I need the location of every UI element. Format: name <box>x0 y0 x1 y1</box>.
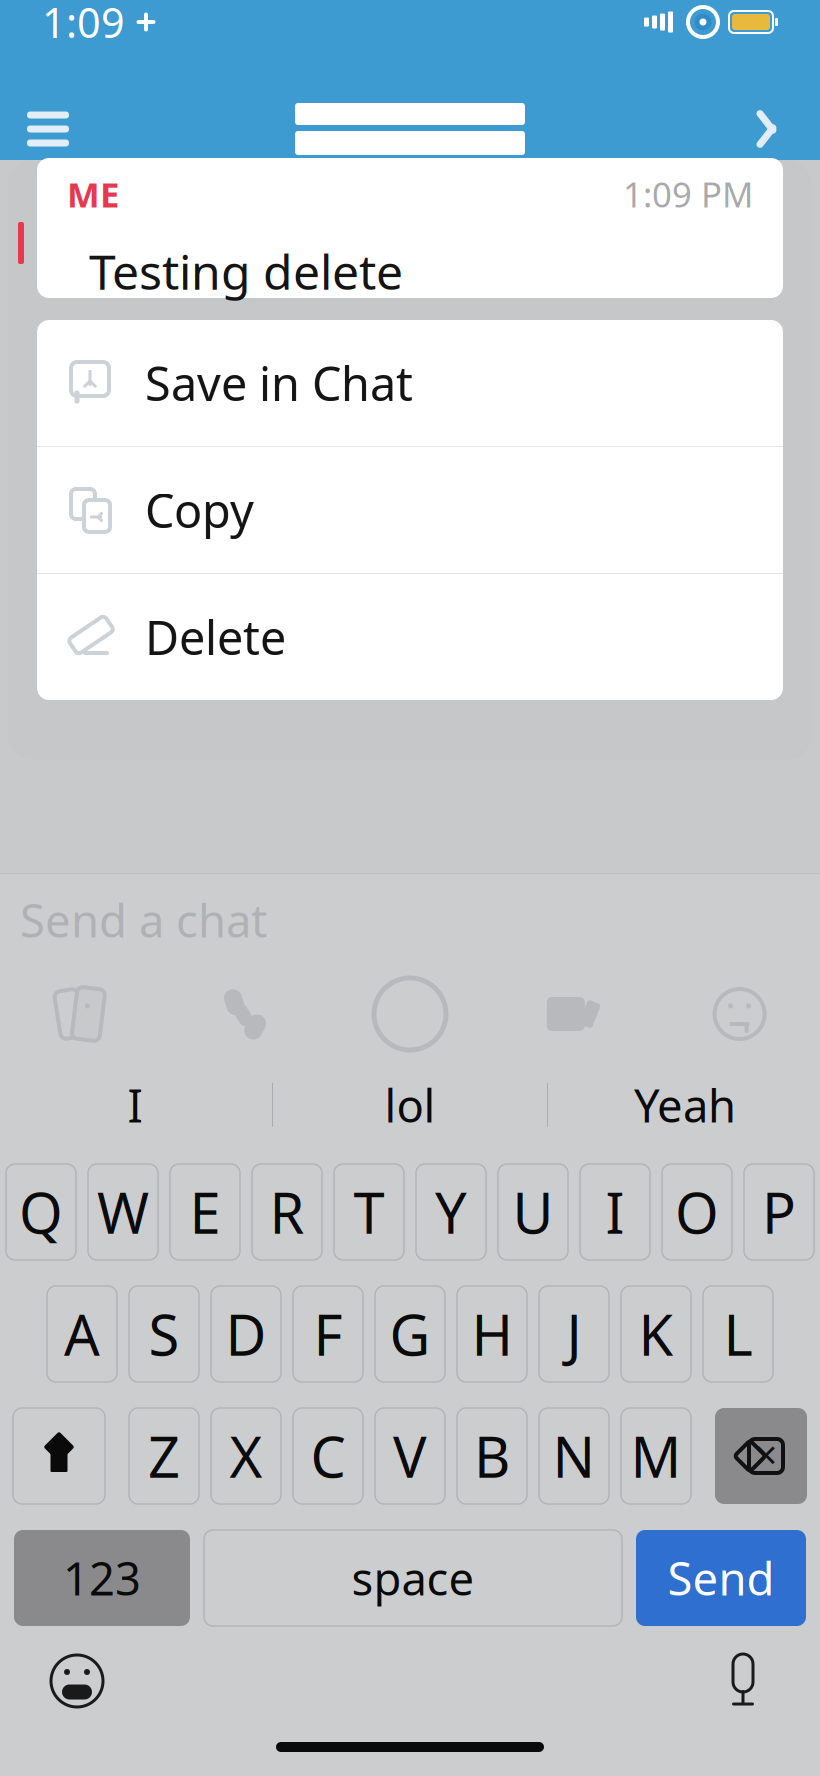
button[interactable]: U <box>498 1164 568 1260</box>
staticText: A <box>64 1297 100 1371</box>
staticText: × <box>754 1427 777 1480</box>
staticText: K <box>638 1297 673 1371</box>
button[interactable]: O <box>662 1164 732 1260</box>
button[interactable]: N <box>539 1408 609 1504</box>
button[interactable]: lol <box>273 1062 547 1148</box>
button[interactable]: V <box>375 1408 445 1504</box>
button[interactable]: E <box>170 1164 240 1260</box>
button[interactable]: Emoji keyboard <box>42 1646 112 1716</box>
button[interactable]: Yeah <box>548 1062 820 1148</box>
button[interactable]: I <box>0 1062 272 1148</box>
button[interactable]: H <box>457 1286 527 1382</box>
staticText: G <box>389 1297 430 1371</box>
button[interactable]: S <box>129 1286 199 1382</box>
button[interactable]: G <box>375 1286 445 1382</box>
staticText: N <box>552 1419 595 1493</box>
staticText: R <box>269 1175 304 1249</box>
staticText: X <box>229 1419 262 1493</box>
button[interactable]: W <box>88 1164 158 1260</box>
staticText: Yeah <box>634 1075 736 1135</box>
button[interactable]: D <box>211 1286 281 1382</box>
button[interactable]: R <box>252 1164 322 1260</box>
button[interactable]: K <box>621 1286 691 1382</box>
button[interactable]: T <box>334 1164 404 1260</box>
staticText: W <box>97 1175 149 1249</box>
staticText: space <box>351 1548 474 1608</box>
staticText: Q <box>19 1175 63 1249</box>
button[interactable]: Copy <box>37 446 783 573</box>
button[interactable]: Save in Chat <box>37 320 783 446</box>
button[interactable]: F <box>293 1286 363 1382</box>
staticText: M <box>630 1419 681 1493</box>
staticText: Delete <box>145 606 286 668</box>
button[interactable]: Delete <box>37 573 783 700</box>
staticText: Copy <box>145 479 254 541</box>
button[interactable]: Y <box>416 1164 486 1260</box>
staticText: Send a chat <box>20 890 267 950</box>
button[interactable]: space <box>204 1530 622 1626</box>
staticText: F <box>313 1297 342 1371</box>
button[interactable]: Menu <box>16 101 80 157</box>
button[interactable]: Z <box>129 1408 199 1504</box>
staticText: H <box>471 1297 512 1371</box>
button[interactable]: Q <box>6 1164 76 1260</box>
staticText: 1:09 <box>42 0 125 49</box>
staticText: lol <box>384 1075 435 1135</box>
staticText: E <box>189 1175 220 1249</box>
button[interactable]: Backspace <box>715 1408 807 1504</box>
button[interactable]: B <box>457 1408 527 1504</box>
staticText: Z <box>148 1419 180 1493</box>
button[interactable]: Send a snap from memories <box>0 983 163 1045</box>
staticText: D <box>225 1297 266 1371</box>
staticText: V <box>393 1419 427 1493</box>
staticText: Testing delete <box>89 239 403 303</box>
button[interactable]: Shift <box>13 1408 105 1504</box>
staticText: O <box>675 1175 719 1249</box>
staticText: C <box>310 1419 345 1493</box>
button[interactable]: A <box>47 1286 117 1382</box>
button[interactable]: I <box>580 1164 650 1260</box>
staticText: Send <box>667 1548 774 1608</box>
button[interactable]: J <box>539 1286 609 1382</box>
staticText: ME <box>67 171 119 217</box>
staticText: Save in Chat <box>145 352 413 414</box>
button[interactable]: Dictation <box>708 1646 778 1716</box>
button[interactable]: Stickers <box>657 983 820 1045</box>
staticText: I <box>605 1175 624 1249</box>
staticText: J <box>566 1297 581 1371</box>
button[interactable]: 123 <box>14 1530 190 1626</box>
button[interactable]: Send <box>636 1530 806 1626</box>
button[interactable]: M <box>621 1408 691 1504</box>
button[interactable]: P <box>744 1164 814 1260</box>
button[interactable]: Voice call <box>163 985 328 1043</box>
staticText: U <box>512 1175 553 1249</box>
staticText: P <box>762 1175 796 1249</box>
staticText: I <box>127 1075 142 1135</box>
button[interactable]: L <box>703 1286 773 1382</box>
button[interactable]: Video call <box>492 994 657 1034</box>
staticText: 123 <box>63 1548 141 1608</box>
button[interactable]: Forward <box>740 101 804 157</box>
staticText: S <box>148 1297 179 1371</box>
staticText: Y <box>435 1175 467 1249</box>
staticText: B <box>474 1419 510 1493</box>
staticText: L <box>723 1297 752 1371</box>
staticText: T <box>353 1175 384 1249</box>
button[interactable]: C <box>293 1408 363 1504</box>
button[interactable]: X <box>211 1408 281 1504</box>
button[interactable]: Camera <box>328 972 492 1056</box>
staticText: 1:09 PM <box>623 171 753 217</box>
